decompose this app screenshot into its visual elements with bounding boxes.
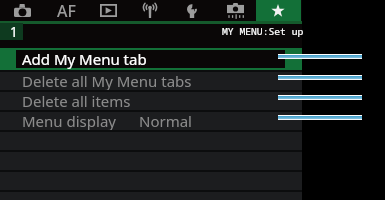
button[interactable]: Autofocus settings (45, 0, 87, 21)
button[interactable]: Delete all My Menu tabs (0, 70, 302, 90)
staticText: MY MENU:Set up (222, 25, 304, 38)
button[interactable]: Wireless settings (129, 0, 171, 21)
staticText: Delete all items (22, 91, 131, 111)
staticText: AF (57, 0, 76, 21)
staticText: Normal (139, 111, 192, 131)
staticText: 1 (10, 23, 18, 40)
button[interactable]: My Menu (257, 0, 299, 21)
button[interactable]: Delete all items (0, 90, 302, 110)
button[interactable]: Menu display (0, 110, 302, 130)
button[interactable]: Custom functions (214, 0, 256, 21)
staticText: Add My Menu tab (22, 49, 147, 69)
button[interactable]: Add My Menu tab (0, 48, 302, 70)
button[interactable]: Set-up settings (171, 0, 213, 21)
staticText: Delete all My Menu tabs (22, 71, 192, 91)
button[interactable]: Playback settings (87, 0, 129, 21)
button[interactable]: Shooting settings (1, 0, 43, 21)
button[interactable]: 1 (0, 23, 23, 40)
staticText: Menu display (22, 111, 116, 131)
